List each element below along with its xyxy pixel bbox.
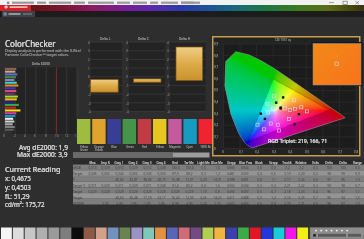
staticText: 0,7	[271, 190, 276, 194]
staticText: 0,4	[288, 150, 293, 154]
staticText: 2,20	[298, 172, 305, 176]
staticText: 0,352	[129, 172, 138, 176]
staticText: 38,06	[143, 178, 152, 182]
staticText: 0,5	[257, 190, 262, 194]
staticText: 2,40	[116, 202, 123, 206]
staticText: 0,4	[313, 190, 318, 194]
staticText: Tracklt Blue	[280, 161, 294, 165]
staticText: 0,310	[115, 166, 124, 170]
staticText: 81,4	[172, 184, 179, 188]
staticText: Light Me	[197, 161, 210, 165]
staticText: 0,0	[201, 166, 206, 170]
staticText: 4	[126, 41, 128, 45]
staticText: 1,2	[215, 172, 220, 176]
staticText: 2,2	[299, 166, 304, 170]
staticText: 0,8	[215, 190, 220, 194]
staticText: 6398	[227, 178, 235, 182]
staticText: 0,328	[157, 184, 166, 188]
staticText: dE2000	[73, 202, 85, 206]
staticText: 1,1	[271, 178, 276, 182]
staticText: 1,6	[215, 184, 220, 188]
staticText: 100,0	[185, 166, 194, 170]
staticText: RGB Triplet: 219, 166, 71	[268, 137, 328, 144]
staticText: Target dE2000	[73, 190, 86, 194]
staticText: 0,329	[171, 190, 180, 194]
staticText: 0,311	[115, 184, 124, 188]
staticText: 2,17	[284, 178, 291, 182]
staticText: 96	[341, 178, 345, 182]
staticText: 2,21	[298, 202, 305, 206]
staticText: Gray 2	[128, 161, 138, 165]
staticText: -3	[126, 102, 129, 106]
staticText: 100	[326, 166, 332, 170]
staticText: 0,1	[239, 150, 244, 154]
staticText: 6497	[241, 190, 249, 194]
staticText: 0,3	[201, 172, 206, 176]
staticText: 96	[327, 190, 331, 194]
staticText: Blue Me	[211, 161, 223, 165]
staticText: 2,2	[285, 166, 290, 170]
staticText: 40,63	[115, 196, 124, 200]
staticText: 0,6	[321, 150, 326, 154]
staticText: 0	[3, 134, 5, 138]
staticText: 12	[65, 134, 69, 138]
staticText: -4	[126, 110, 129, 114]
staticText: 2	[88, 58, 90, 62]
staticText: 0,1	[214, 135, 219, 139]
staticText: 99	[327, 184, 331, 188]
staticText: 0,0	[355, 166, 360, 170]
staticText: 95	[327, 196, 331, 200]
staticText: 1	[126, 67, 128, 71]
staticText: 0,8	[214, 54, 219, 58]
staticText: 0,350	[157, 172, 166, 176]
staticText: 98	[327, 172, 331, 176]
staticText: Black Gamm	[252, 161, 266, 165]
staticText: 1,0	[215, 166, 220, 170]
staticText: 97	[341, 190, 345, 194]
staticText: 0,8	[257, 178, 262, 182]
staticText: Max dE2000: 3,9	[17, 150, 68, 159]
staticText: 10	[55, 134, 59, 138]
staticText: 4	[24, 134, 26, 138]
button[interactable]: CalMAN home	[0, 5, 31, 11]
staticText: 1,19	[200, 190, 207, 194]
staticText: 6490	[227, 190, 235, 194]
staticText: -3	[88, 102, 91, 106]
button[interactable]: Workflow tab	[2, 11, 35, 17]
staticText: 1,95	[130, 202, 137, 206]
staticText: Gray 3	[142, 161, 152, 165]
staticText: Yellow Green	[80, 145, 88, 152]
staticText: -2	[88, 93, 91, 97]
staticText: Yellow	[156, 145, 164, 149]
staticText: 0,0	[313, 166, 318, 170]
staticText: 0,311	[143, 184, 152, 188]
staticText: Green	[126, 145, 134, 149]
staticText: -1	[167, 84, 170, 88]
staticText: 94	[341, 196, 345, 200]
staticText: 40,63	[115, 178, 124, 182]
staticText: 0,6	[271, 172, 276, 176]
staticText: Volts	[312, 161, 319, 165]
staticText: 2,20	[284, 202, 291, 206]
staticText: 6502	[227, 184, 235, 188]
staticText: 0,329	[101, 184, 110, 188]
staticText: 6504	[241, 166, 249, 170]
staticText: 1,0	[355, 202, 360, 206]
staticText: 0,3	[214, 112, 219, 116]
staticText: 0,344	[115, 172, 124, 176]
staticText: -3	[167, 102, 170, 106]
staticText: 98	[327, 202, 331, 206]
staticText: 0,329	[88, 190, 97, 194]
staticText: fL: 51,29	[5, 192, 30, 200]
staticText: 6411	[227, 196, 235, 200]
staticText: Grayp	[269, 161, 278, 165]
staticText: 0,313	[88, 166, 97, 170]
staticText: cd/m²: 175,72	[5, 200, 45, 208]
staticText: 12,91	[185, 178, 194, 182]
staticText: 0,9	[355, 172, 360, 176]
staticText: Relative Volt	[294, 161, 308, 165]
staticText: 17,19	[143, 196, 152, 200]
staticText: 36,48	[129, 196, 138, 200]
staticText: 2,21	[284, 184, 291, 188]
staticText: 6493	[241, 202, 249, 206]
